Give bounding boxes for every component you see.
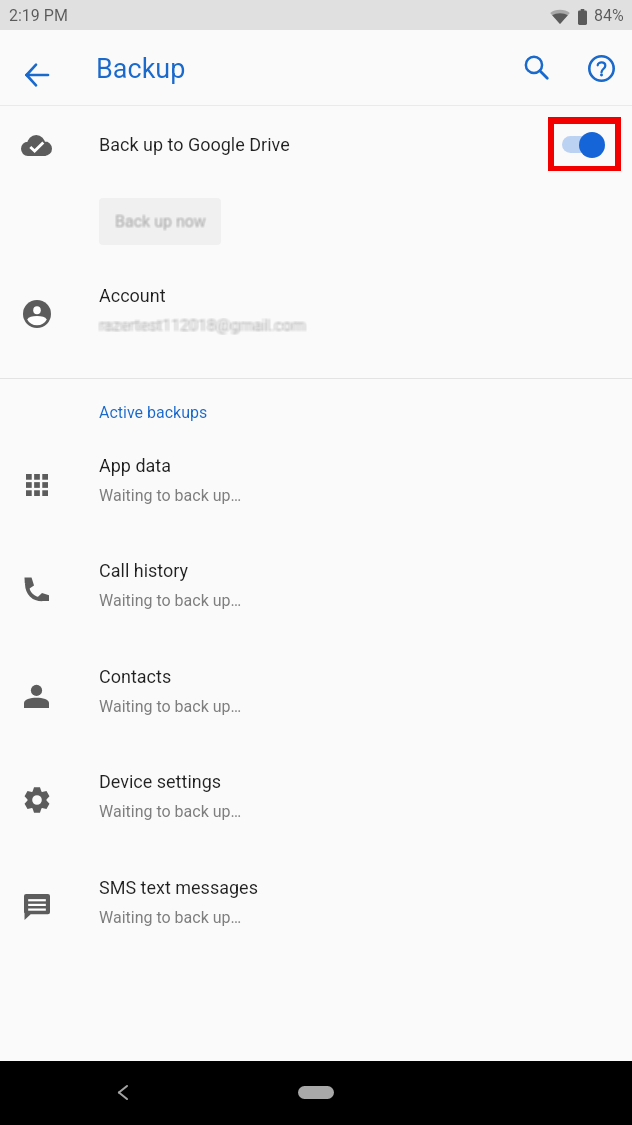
button[interactable]: Call history — [0, 534, 632, 630]
staticText: razertest112018@gmail.com — [97, 317, 304, 336]
staticText: razertest112018@gmail.com — [99, 316, 306, 335]
button[interactable]: Back up to Google Drive switch — [548, 117, 621, 171]
button[interactable]: Contacts — [0, 640, 632, 736]
staticText: Waiting to back up… — [99, 486, 242, 505]
staticText: razertest112018@gmail.com — [98, 317, 305, 336]
staticText: razertest112018@gmail.com — [97, 315, 304, 334]
staticText: razertest112018@gmail.com — [101, 315, 308, 334]
staticText: Back up now — [115, 211, 206, 230]
button[interactable]: Home — [298, 1086, 334, 1099]
staticText: razertest112018@gmail.com — [99, 315, 306, 334]
staticText: razertest112018@gmail.com — [98, 315, 305, 334]
staticText: razertest112018@gmail.com — [98, 316, 305, 335]
staticText: Waiting to back up… — [99, 802, 242, 821]
staticText: Back up to Google Drive — [99, 134, 290, 155]
staticText: Back up now — [114, 213, 205, 232]
staticText: Back up now — [116, 211, 207, 230]
staticText: Back up now — [115, 212, 206, 231]
staticText: Active backups — [99, 403, 208, 422]
button[interactable]: Help — [578, 45, 624, 91]
staticText: Backup — [96, 53, 186, 85]
staticText: razertest112018@gmail.com — [100, 316, 307, 335]
button[interactable]: Back — [100, 1070, 144, 1114]
button[interactable]: App data — [0, 429, 632, 525]
staticText: Waiting to back up… — [99, 697, 242, 716]
button[interactable]: Back up now — [99, 198, 221, 245]
staticText: 2:19 PM — [9, 6, 68, 25]
staticText: 84% — [594, 6, 624, 25]
staticText: Back up now — [115, 213, 206, 232]
staticText: razertest112018@gmail.com — [99, 317, 306, 336]
staticText: Waiting to back up… — [99, 908, 242, 927]
staticText: razertest112018@gmail.com — [101, 317, 308, 336]
staticText: razertest112018@gmail.com — [101, 316, 308, 335]
staticText: Call history — [99, 560, 189, 581]
staticText: Back up now — [116, 212, 207, 231]
button[interactable]: Back — [12, 51, 60, 99]
staticText: Back up now — [114, 212, 205, 231]
staticText: Account — [99, 285, 166, 306]
button[interactable]: SMS text messages — [0, 851, 632, 947]
button[interactable]: Account — [0, 268, 632, 344]
staticText: razertest112018@gmail.com — [97, 316, 304, 335]
staticText: App data — [99, 455, 172, 476]
staticText: Contacts — [99, 666, 172, 687]
button[interactable]: Back up to Google Drive — [0, 112, 632, 180]
staticText: razertest112018@gmail.com — [100, 317, 307, 336]
staticText: Waiting to back up… — [99, 591, 242, 610]
staticText: SMS text messages — [99, 877, 258, 898]
staticText: Device settings — [99, 771, 222, 792]
staticText: Back up now — [116, 213, 207, 232]
button[interactable]: Device settings — [0, 745, 632, 841]
staticText: razertest112018@gmail.com — [100, 315, 307, 334]
button[interactable]: Search — [513, 44, 559, 90]
staticText: Back up now — [114, 211, 205, 230]
